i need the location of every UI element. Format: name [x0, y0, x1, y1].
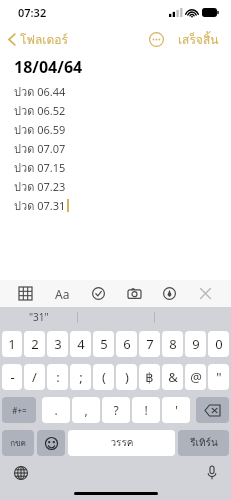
staticText: ?	[113, 402, 119, 418]
staticText: 5	[100, 335, 108, 353]
staticText: !	[144, 402, 148, 418]
button[interactable]: ;	[70, 364, 91, 390]
staticText: #+=	[12, 405, 27, 416]
button[interactable]: 9	[185, 331, 206, 357]
button[interactable]: ?	[102, 397, 130, 423]
staticText: 07:32	[18, 5, 47, 20]
button[interactable]: 2	[24, 331, 45, 357]
button[interactable]: วรรค	[68, 430, 175, 456]
staticText: 9	[192, 335, 200, 353]
button[interactable]: ,	[72, 397, 100, 423]
staticText: 4	[77, 335, 85, 353]
button[interactable]: Backspace	[196, 397, 229, 423]
staticText: @	[190, 368, 202, 386]
staticText: ;	[79, 368, 83, 386]
button[interactable]: 4	[70, 331, 91, 357]
staticText: รีเทิร์น	[190, 435, 218, 451]
staticText: 0	[215, 335, 223, 353]
button[interactable]: Aa	[52, 283, 73, 305]
button[interactable]: โฟลเดอร์	[0, 26, 76, 53]
button[interactable]: Markup	[160, 284, 179, 303]
staticText: ปวด 07.07	[14, 140, 66, 157]
button[interactable]: "31"	[0, 307, 77, 327]
button[interactable]: )	[116, 364, 137, 390]
button[interactable]: Checklist	[89, 284, 108, 303]
staticText: (	[102, 368, 106, 386]
button[interactable]: รีเทิร์น	[178, 430, 229, 456]
staticText: "31"	[29, 310, 49, 324]
staticText: วรรค	[110, 435, 134, 451]
staticText: '	[175, 402, 178, 418]
button[interactable]: เสร็จสิ้น	[172, 26, 225, 53]
staticText: ปวด 07.23	[14, 178, 66, 195]
button[interactable]: Table	[16, 284, 35, 303]
staticText: ,	[84, 402, 88, 418]
button[interactable]: Close keyboard	[196, 284, 215, 303]
button[interactable]: "	[208, 364, 229, 390]
staticText: โฟลเดอร์	[20, 30, 68, 49]
button[interactable]: 6	[116, 331, 137, 357]
staticText: )	[125, 368, 129, 386]
button[interactable]: 5	[93, 331, 114, 357]
button[interactable]: -	[2, 364, 22, 390]
button[interactable]: Emoji	[37, 430, 65, 456]
staticText: 6	[123, 335, 131, 353]
button[interactable]: :	[47, 364, 68, 390]
staticText: เสร็จสิ้น	[178, 30, 219, 49]
button[interactable]: '	[162, 397, 190, 423]
staticText: กขค	[10, 437, 26, 450]
staticText: /	[32, 368, 37, 386]
button[interactable]: Switch keyboard	[12, 464, 30, 482]
button[interactable]: (	[93, 364, 114, 390]
button[interactable]: 3	[47, 331, 68, 357]
staticText: &	[168, 368, 178, 386]
staticText: 3	[54, 335, 62, 353]
button[interactable]: /	[24, 364, 45, 390]
staticText: 1	[8, 335, 16, 353]
staticText: 2	[31, 335, 39, 353]
button[interactable]: Dictation	[205, 464, 219, 482]
staticText: ปวด 07.15	[14, 159, 66, 176]
button[interactable]: !	[132, 397, 160, 423]
button[interactable]: 1	[2, 331, 22, 357]
staticText: .	[54, 402, 58, 418]
staticText: 7	[146, 335, 154, 353]
button[interactable]: ฿	[139, 364, 160, 390]
button[interactable]: กขค	[2, 430, 34, 456]
staticText: Aa	[55, 286, 70, 302]
button[interactable]: 0	[208, 331, 229, 357]
button[interactable]: @	[185, 364, 206, 390]
staticText: "	[216, 368, 222, 386]
staticText: ปวด 06.59	[14, 121, 66, 138]
staticText: :	[56, 368, 60, 386]
staticText: ปวด 07.31	[14, 197, 66, 214]
staticText: -	[10, 368, 15, 386]
button[interactable]: 8	[162, 331, 183, 357]
button[interactable]: More options	[145, 28, 168, 51]
staticText: 18/04/64	[14, 56, 83, 78]
button[interactable]: &	[162, 364, 183, 390]
staticText: ฿	[145, 370, 154, 385]
button[interactable]: .	[42, 397, 70, 423]
button[interactable]: #+=	[2, 397, 36, 423]
staticText: ปวด 06.52	[14, 102, 66, 119]
staticText: ปวด 06.44	[14, 83, 66, 100]
button[interactable]: Camera	[125, 284, 144, 303]
staticText: 8	[169, 335, 177, 353]
button[interactable]: 7	[139, 331, 160, 357]
